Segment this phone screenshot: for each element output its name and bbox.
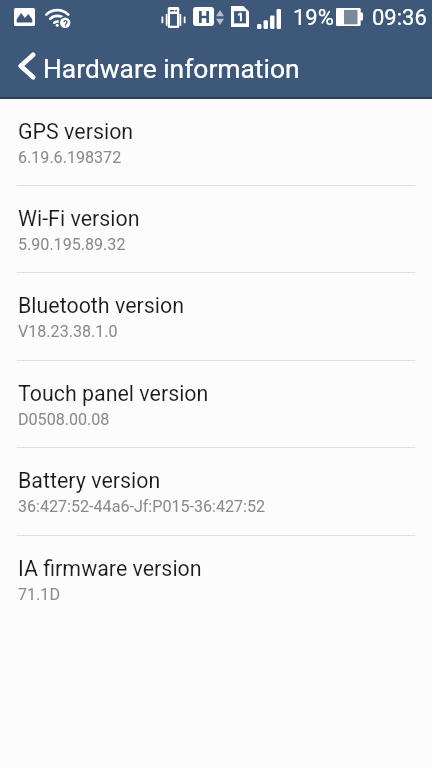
staticText: V18.23.38.1.0: [18, 322, 118, 341]
staticText: 36:427:52-44a6-Jf:P015-36:427:52: [18, 497, 266, 516]
staticText: 5.90.195.89.32: [18, 235, 126, 254]
button[interactable]: Bluetooth version: [0, 273, 432, 361]
staticText: 19%: [293, 5, 334, 31]
button[interactable]: Navigate up: [6, 45, 48, 87]
button[interactable]: Touch panel version: [0, 361, 432, 448]
staticText: 71.1D: [18, 585, 60, 604]
staticText: Battery version: [18, 468, 161, 493]
staticText: Touch panel version: [18, 381, 209, 406]
staticText: 09:36: [372, 5, 427, 31]
button[interactable]: GPS version: [0, 99, 432, 186]
button[interactable]: Battery version: [0, 448, 432, 536]
staticText: ?: [63, 19, 68, 27]
staticText: Wi-Fi version: [18, 206, 140, 231]
staticText: 6.19.6.198372: [18, 148, 122, 167]
button[interactable]: IA firmware version: [0, 536, 432, 626]
staticText: D0508.00.08: [18, 410, 110, 429]
staticText: Hardware information: [43, 54, 300, 85]
button[interactable]: Wi-Fi version: [0, 186, 432, 273]
staticText: IA firmware version: [18, 556, 202, 581]
staticText: GPS version: [18, 119, 134, 144]
staticText: Bluetooth version: [18, 293, 185, 318]
